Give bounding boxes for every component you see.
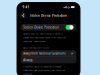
staticText: locations. (23, 39, 34, 43)
button[interactable]: Away from Familiar Locations (21, 50, 76, 57)
staticText: Away from Familiar Locations (23, 52, 65, 55)
staticText: Require Face ID and a security delay to (23, 32, 63, 35)
staticText: locations. (23, 72, 33, 75)
button[interactable]: Learn more... (34, 39, 48, 43)
staticText: Stolen Device Protection (23, 25, 59, 29)
staticText: 9:41 (22, 5, 29, 9)
button[interactable]: Stolen Device Protection (21, 24, 76, 31)
staticText: Always (23, 58, 32, 62)
staticText: these settings when away from familiar (23, 68, 65, 72)
staticText: Stolen Device Protection (30, 13, 67, 17)
staticText: Learn more... (34, 39, 48, 43)
staticText: A security delay is required to change (23, 65, 61, 68)
button[interactable]: Always (21, 57, 76, 63)
staticText: change settings when away from familiar (23, 36, 66, 39)
button[interactable]: Back (20, 13, 26, 18)
staticText: REQUIRE SECURITY DELAY (23, 46, 49, 49)
